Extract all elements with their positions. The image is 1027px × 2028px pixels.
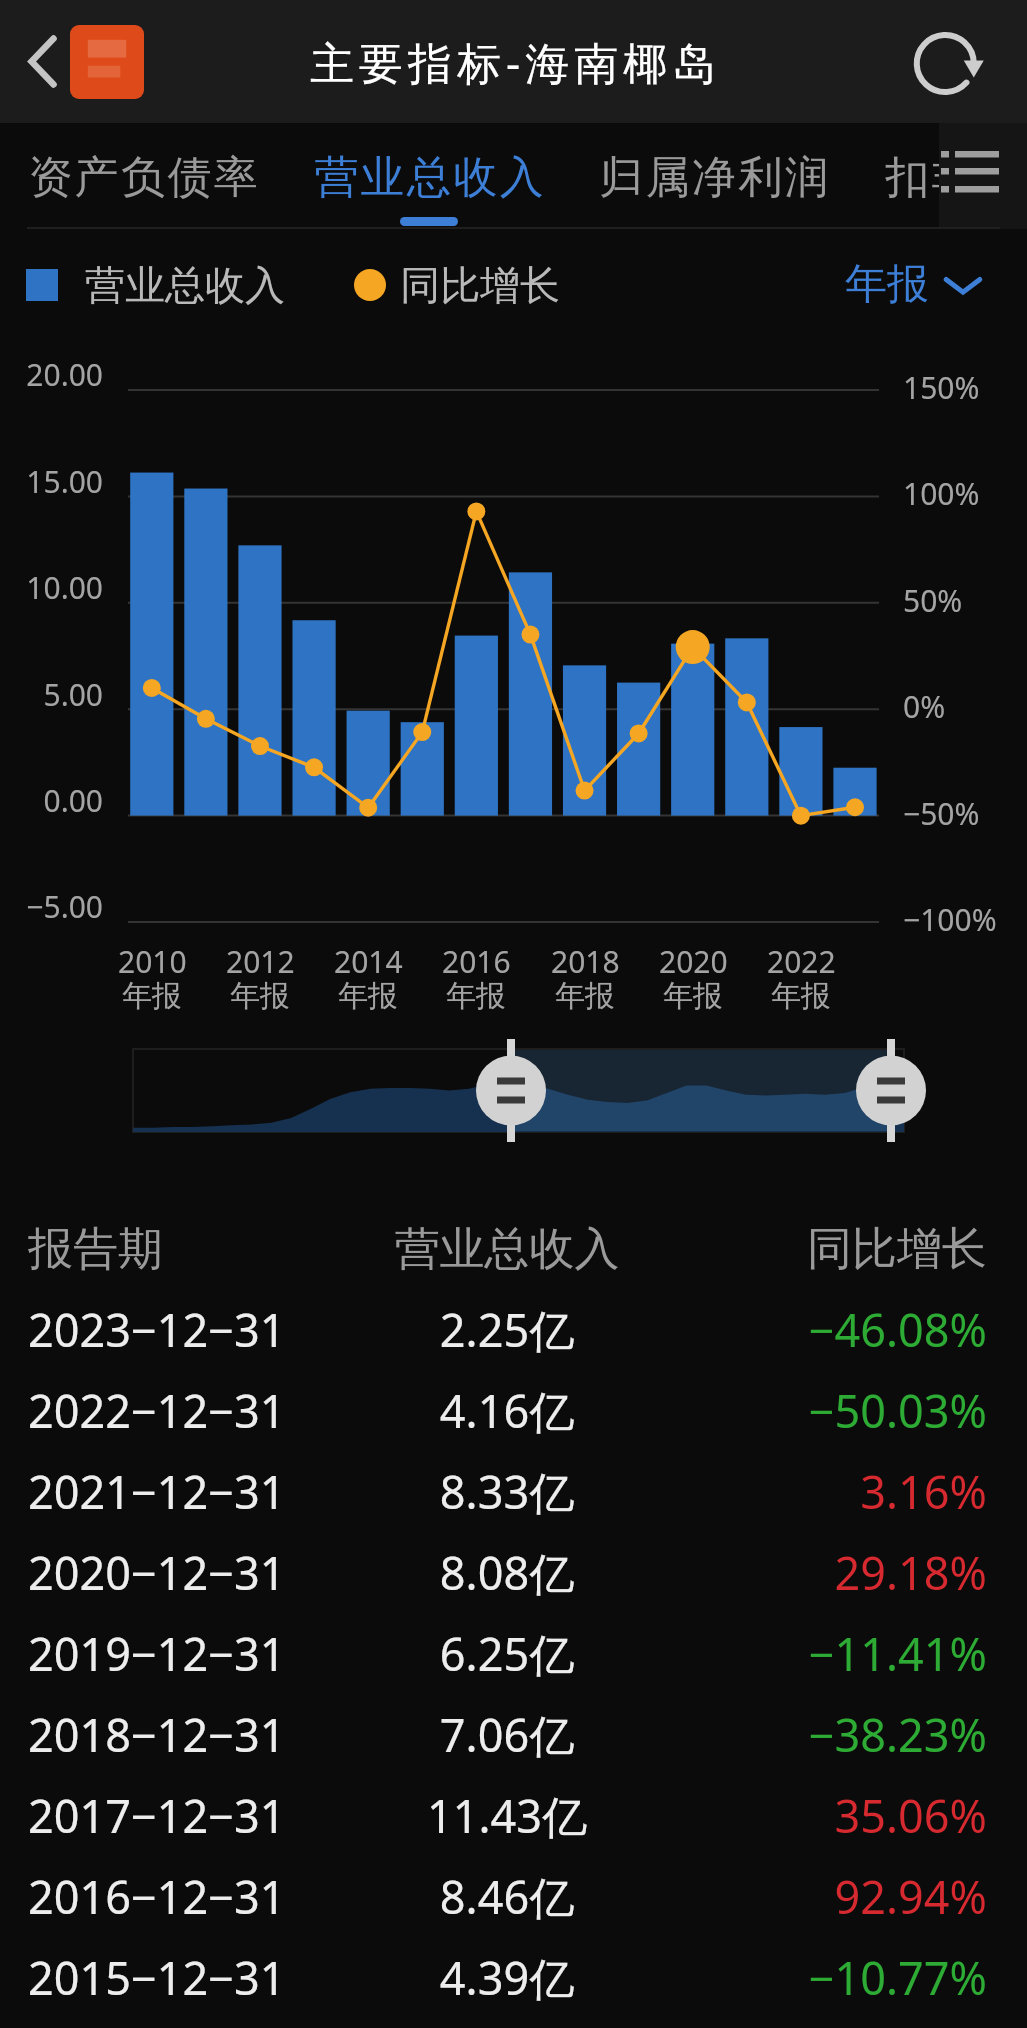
- staticText: 年报: [663, 977, 723, 1015]
- staticText: 年报: [338, 977, 398, 1015]
- staticText: 29.18%: [627, 1542, 987, 1603]
- staticText: 2023−12−31: [28, 1299, 286, 1360]
- button[interactable]: Indicator list: [939, 123, 1027, 229]
- staticText: 2022−12−31: [28, 1380, 286, 1441]
- staticText: 92.94%: [627, 1866, 987, 1927]
- staticText: −50.03%: [627, 1380, 987, 1441]
- staticText: 年报: [555, 977, 615, 1015]
- staticText: 主要指标-海南椰岛: [310, 32, 722, 92]
- staticText: 年报: [446, 977, 506, 1015]
- staticText: 8.33亿: [327, 1461, 687, 1522]
- staticText: 营业总收入: [327, 1221, 687, 1278]
- staticText: 4.16亿: [327, 1380, 687, 1441]
- staticText: 2012: [226, 941, 295, 982]
- staticText: −10.77%: [627, 1947, 987, 2008]
- staticText: 0.00: [0, 780, 103, 821]
- staticText: 6.25亿: [327, 1623, 687, 1684]
- staticText: 10.00: [0, 567, 103, 608]
- staticText: 年报: [845, 258, 929, 311]
- staticText: 2022: [767, 941, 836, 982]
- button[interactable]: 扣非净利润: [858, 123, 1027, 229]
- staticText: 2016: [442, 941, 511, 982]
- staticText: 11.43亿: [327, 1785, 687, 1846]
- button[interactable]: 营业总收入: [287, 123, 571, 229]
- staticText: 8.46亿: [327, 1866, 687, 1927]
- staticText: −46.08%: [627, 1299, 987, 1360]
- staticText: 同比增长: [627, 1221, 987, 1278]
- staticText: 100%: [903, 473, 980, 514]
- staticText: 15.00: [0, 461, 103, 502]
- button[interactable]: 2023−12−31: [0, 1289, 1027, 1370]
- button[interactable]: 2016−12−31: [0, 1856, 1027, 1937]
- button[interactable]: 年报: [845, 258, 983, 311]
- button[interactable]: 2020−12−31: [0, 1532, 1027, 1613]
- button[interactable]: 2019−12−31: [0, 1613, 1027, 1694]
- staticText: −38.23%: [627, 1704, 987, 1765]
- staticText: 150%: [903, 367, 980, 408]
- button[interactable]: 2021−12−31: [0, 1451, 1027, 1532]
- staticText: 同比增长: [400, 260, 560, 310]
- staticText: 50%: [903, 580, 963, 621]
- staticText: 5.00: [0, 674, 103, 715]
- staticText: 报告期: [28, 1221, 163, 1278]
- staticText: 2014: [334, 941, 403, 982]
- staticText: 营业总收入: [313, 150, 545, 205]
- staticText: 2021−12−31: [28, 1461, 286, 1522]
- staticText: 2.25亿: [327, 1299, 687, 1360]
- staticText: 7.06亿: [327, 1704, 687, 1765]
- button[interactable]: Chart range selector: [0, 1040, 1027, 1200]
- staticText: 2015−12−31: [28, 1947, 286, 2008]
- staticText: 20.00: [0, 354, 103, 395]
- staticText: 2018: [551, 941, 620, 982]
- button[interactable]: 2015−12−31: [0, 1937, 1027, 2018]
- staticText: 2020: [659, 941, 728, 982]
- staticText: 2019−12−31: [28, 1623, 286, 1684]
- button[interactable]: 2018−12−31: [0, 1694, 1027, 1775]
- staticText: 35.06%: [627, 1785, 987, 1846]
- staticText: 0%: [903, 686, 946, 727]
- staticText: 4.39亿: [327, 1947, 687, 2008]
- staticText: 年报: [230, 977, 290, 1015]
- staticText: 营业总收入: [85, 260, 285, 310]
- staticText: 资产负债率: [27, 150, 259, 205]
- staticText: 2020−12−31: [28, 1542, 286, 1603]
- staticText: 3.16%: [627, 1461, 987, 1522]
- button[interactable]: Refresh: [905, 0, 1027, 123]
- button[interactable]: 2017−12−31: [0, 1775, 1027, 1856]
- button[interactable]: 归属净利润: [572, 123, 856, 229]
- staticText: −50%: [903, 793, 980, 834]
- staticText: −5.00: [0, 886, 103, 927]
- staticText: 2017−12−31: [28, 1785, 286, 1846]
- staticText: 2018−12−31: [28, 1704, 286, 1765]
- button[interactable]: 2022−12−31: [0, 1370, 1027, 1451]
- staticText: −11.41%: [627, 1623, 987, 1684]
- staticText: 8.08亿: [327, 1542, 687, 1603]
- staticText: 扣非净利润: [884, 150, 1027, 205]
- staticText: −100%: [903, 899, 997, 940]
- staticText: 年报: [771, 977, 831, 1015]
- button[interactable]: 资产负债率: [1, 123, 285, 229]
- staticText: 年报: [122, 977, 182, 1015]
- staticText: 2010: [118, 941, 187, 982]
- button[interactable]: Back: [0, 0, 76, 123]
- staticText: 2016−12−31: [28, 1866, 286, 1927]
- staticText: 归属净利润: [598, 150, 830, 205]
